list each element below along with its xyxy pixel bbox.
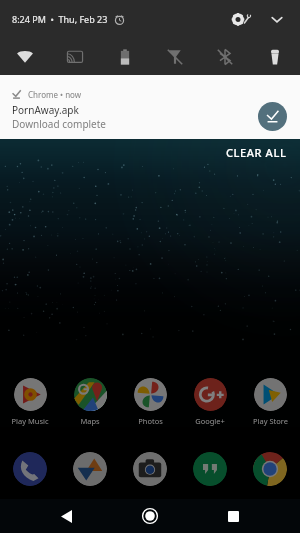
button[interactable]: flash_off (150, 38, 200, 75)
button[interactable]: bt_off (200, 38, 250, 75)
button[interactable]: Play Music (0, 378, 60, 426)
staticText: Maps (80, 416, 100, 426)
button[interactable]: Download complete (258, 102, 287, 131)
button[interactable]: CLEAR ALL (213, 141, 300, 164)
staticText: 8:24 PM • Thu, Feb 23 (12, 13, 108, 25)
button[interactable]: Messaging (60, 452, 120, 486)
button[interactable]: Google+ (180, 378, 240, 426)
staticText: Google+ (195, 416, 225, 426)
staticText: CLEAR ALL (226, 145, 287, 160)
button[interactable]: Chrome (240, 452, 300, 486)
button[interactable]: cast (50, 38, 100, 75)
button[interactable]: Home (109, 499, 191, 533)
staticText: Play Music (11, 416, 49, 426)
button[interactable]: Photos (120, 378, 180, 426)
staticText: PornAway.apk (12, 103, 79, 117)
button[interactable]: Phone (0, 452, 60, 486)
button[interactable]: Maps (60, 378, 120, 426)
staticText: Download complete (12, 117, 106, 131)
button[interactable]: Play Store (240, 378, 300, 426)
button[interactable]: Camera (120, 452, 180, 486)
button[interactable]: torch (250, 38, 300, 75)
button[interactable]: Recents (191, 499, 276, 533)
button[interactable]: Back (24, 499, 109, 533)
staticText: Chrome • now (28, 89, 82, 100)
button[interactable]: battery (100, 38, 150, 75)
staticText: Play Store (253, 416, 288, 426)
button[interactable]: Expand (271, 10, 283, 28)
button[interactable]: Settings (232, 9, 256, 29)
staticText: Photos (138, 416, 163, 426)
button[interactable]: Hangouts (180, 452, 240, 486)
button[interactable]: wifi (0, 38, 50, 75)
